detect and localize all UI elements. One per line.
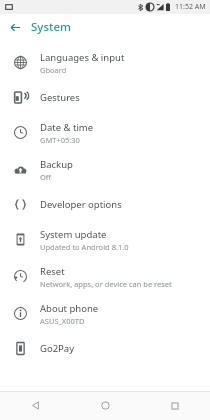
button[interactable]: System update	[0, 221, 210, 258]
button[interactable]: Back	[5, 17, 25, 37]
staticText: Backup	[40, 158, 73, 171]
button[interactable]: Back	[0, 391, 70, 420]
button[interactable]: Date & time	[0, 114, 210, 151]
staticText: Reset	[40, 265, 65, 278]
staticText: Date & time	[40, 121, 94, 134]
staticText: Gestures	[40, 91, 80, 104]
button[interactable]: Recent apps	[140, 391, 210, 420]
staticText: System	[31, 19, 71, 35]
button[interactable]: Reset	[0, 258, 210, 295]
button[interactable]: About phone	[0, 295, 210, 332]
button[interactable]: Go2Pay	[0, 332, 210, 365]
staticText: About phone	[40, 302, 99, 315]
staticText: Off	[40, 172, 52, 182]
staticText: Updated to Android 8.1.0	[40, 242, 129, 252]
staticText: Languages & input	[40, 51, 125, 64]
staticText: 11:52 AM	[175, 2, 206, 12]
button[interactable]: Languages & input	[0, 44, 210, 81]
button[interactable]: Developer options	[0, 188, 210, 221]
button[interactable]: Backup	[0, 151, 210, 188]
staticText: Developer options	[40, 198, 122, 211]
staticText: System update	[40, 228, 107, 241]
staticText: Network, apps, or device can be reset	[40, 279, 172, 289]
staticText: ASUS_X00TD	[40, 316, 85, 326]
staticText: GMT+05:30	[40, 135, 80, 145]
staticText: Gboard	[40, 65, 67, 75]
staticText: Go2Pay	[40, 342, 75, 355]
button[interactable]: Home	[70, 391, 140, 420]
button[interactable]: Gestures	[0, 81, 210, 114]
